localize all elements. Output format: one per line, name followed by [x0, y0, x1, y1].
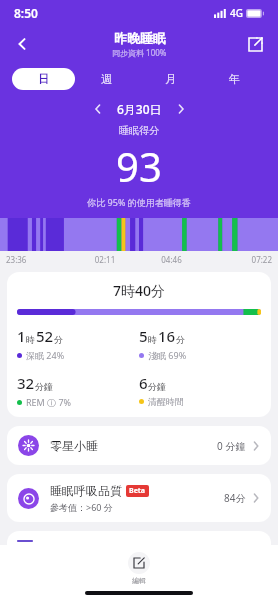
staticText: 年: [229, 72, 240, 86]
staticText: 時: [26, 334, 35, 345]
staticText: 16: [158, 326, 176, 346]
button[interactable]: Previous day: [89, 100, 107, 118]
staticText: 淺眠 69%: [148, 349, 187, 361]
staticText: 84分: [224, 491, 246, 505]
staticText: Beta: [129, 486, 146, 496]
staticText: 6月30日: [117, 101, 162, 117]
staticText: 分: [176, 334, 185, 345]
staticText: 你比 95% 的使用者睡得香: [0, 196, 278, 208]
staticText: 分鐘: [148, 381, 166, 392]
staticText: 02:11: [72, 254, 138, 265]
button[interactable]: 日: [12, 68, 75, 90]
staticText: 深眠 24%: [26, 349, 65, 361]
button[interactable]: Next day: [172, 100, 190, 118]
staticText: 分鐘: [35, 381, 53, 392]
staticText: 04:46: [138, 254, 205, 265]
staticText: 同步資料 100%: [112, 47, 167, 58]
button[interactable]: 年: [202, 68, 266, 90]
staticText: 6: [139, 373, 148, 393]
staticText: 07:22: [205, 254, 272, 265]
staticText: 睡眠得分: [0, 124, 278, 137]
staticText: 零星小睡: [50, 438, 98, 453]
staticText: 0 分鐘: [217, 439, 246, 453]
button[interactable]: Share: [240, 29, 270, 59]
staticText: 日: [38, 72, 49, 86]
staticText: 週: [101, 72, 112, 86]
staticText: 睡眠呼吸品質: [50, 483, 122, 498]
staticText: 月: [165, 72, 176, 86]
staticText: 4G: [230, 6, 243, 20]
staticText: 23:36: [6, 254, 72, 265]
staticText: 時: [148, 334, 157, 345]
staticText: 1: [17, 326, 26, 346]
button[interactable]: Back: [6, 28, 38, 60]
staticText: REM ⓘ 7%: [26, 396, 72, 408]
button[interactable]: 編輯: [116, 550, 162, 587]
button[interactable]: 零星小睡: [7, 426, 271, 465]
staticText: 參考值：>60 分: [50, 501, 113, 513]
staticText: 編輯: [132, 576, 146, 585]
staticText: 7時40分: [17, 281, 261, 300]
staticText: 清醒時間: [148, 396, 184, 407]
staticText: 5: [139, 326, 148, 346]
button[interactable]: 睡眠呼吸品質: [7, 474, 271, 522]
staticText: 52: [36, 326, 54, 346]
staticText: 分: [54, 334, 63, 345]
staticText: 32: [17, 373, 35, 393]
staticText: 93: [0, 139, 278, 193]
button[interactable]: 月: [138, 68, 202, 90]
staticText: 昨晚睡眠: [114, 30, 166, 46]
button[interactable]: 週: [75, 68, 138, 90]
staticText: 8:50: [14, 5, 38, 21]
